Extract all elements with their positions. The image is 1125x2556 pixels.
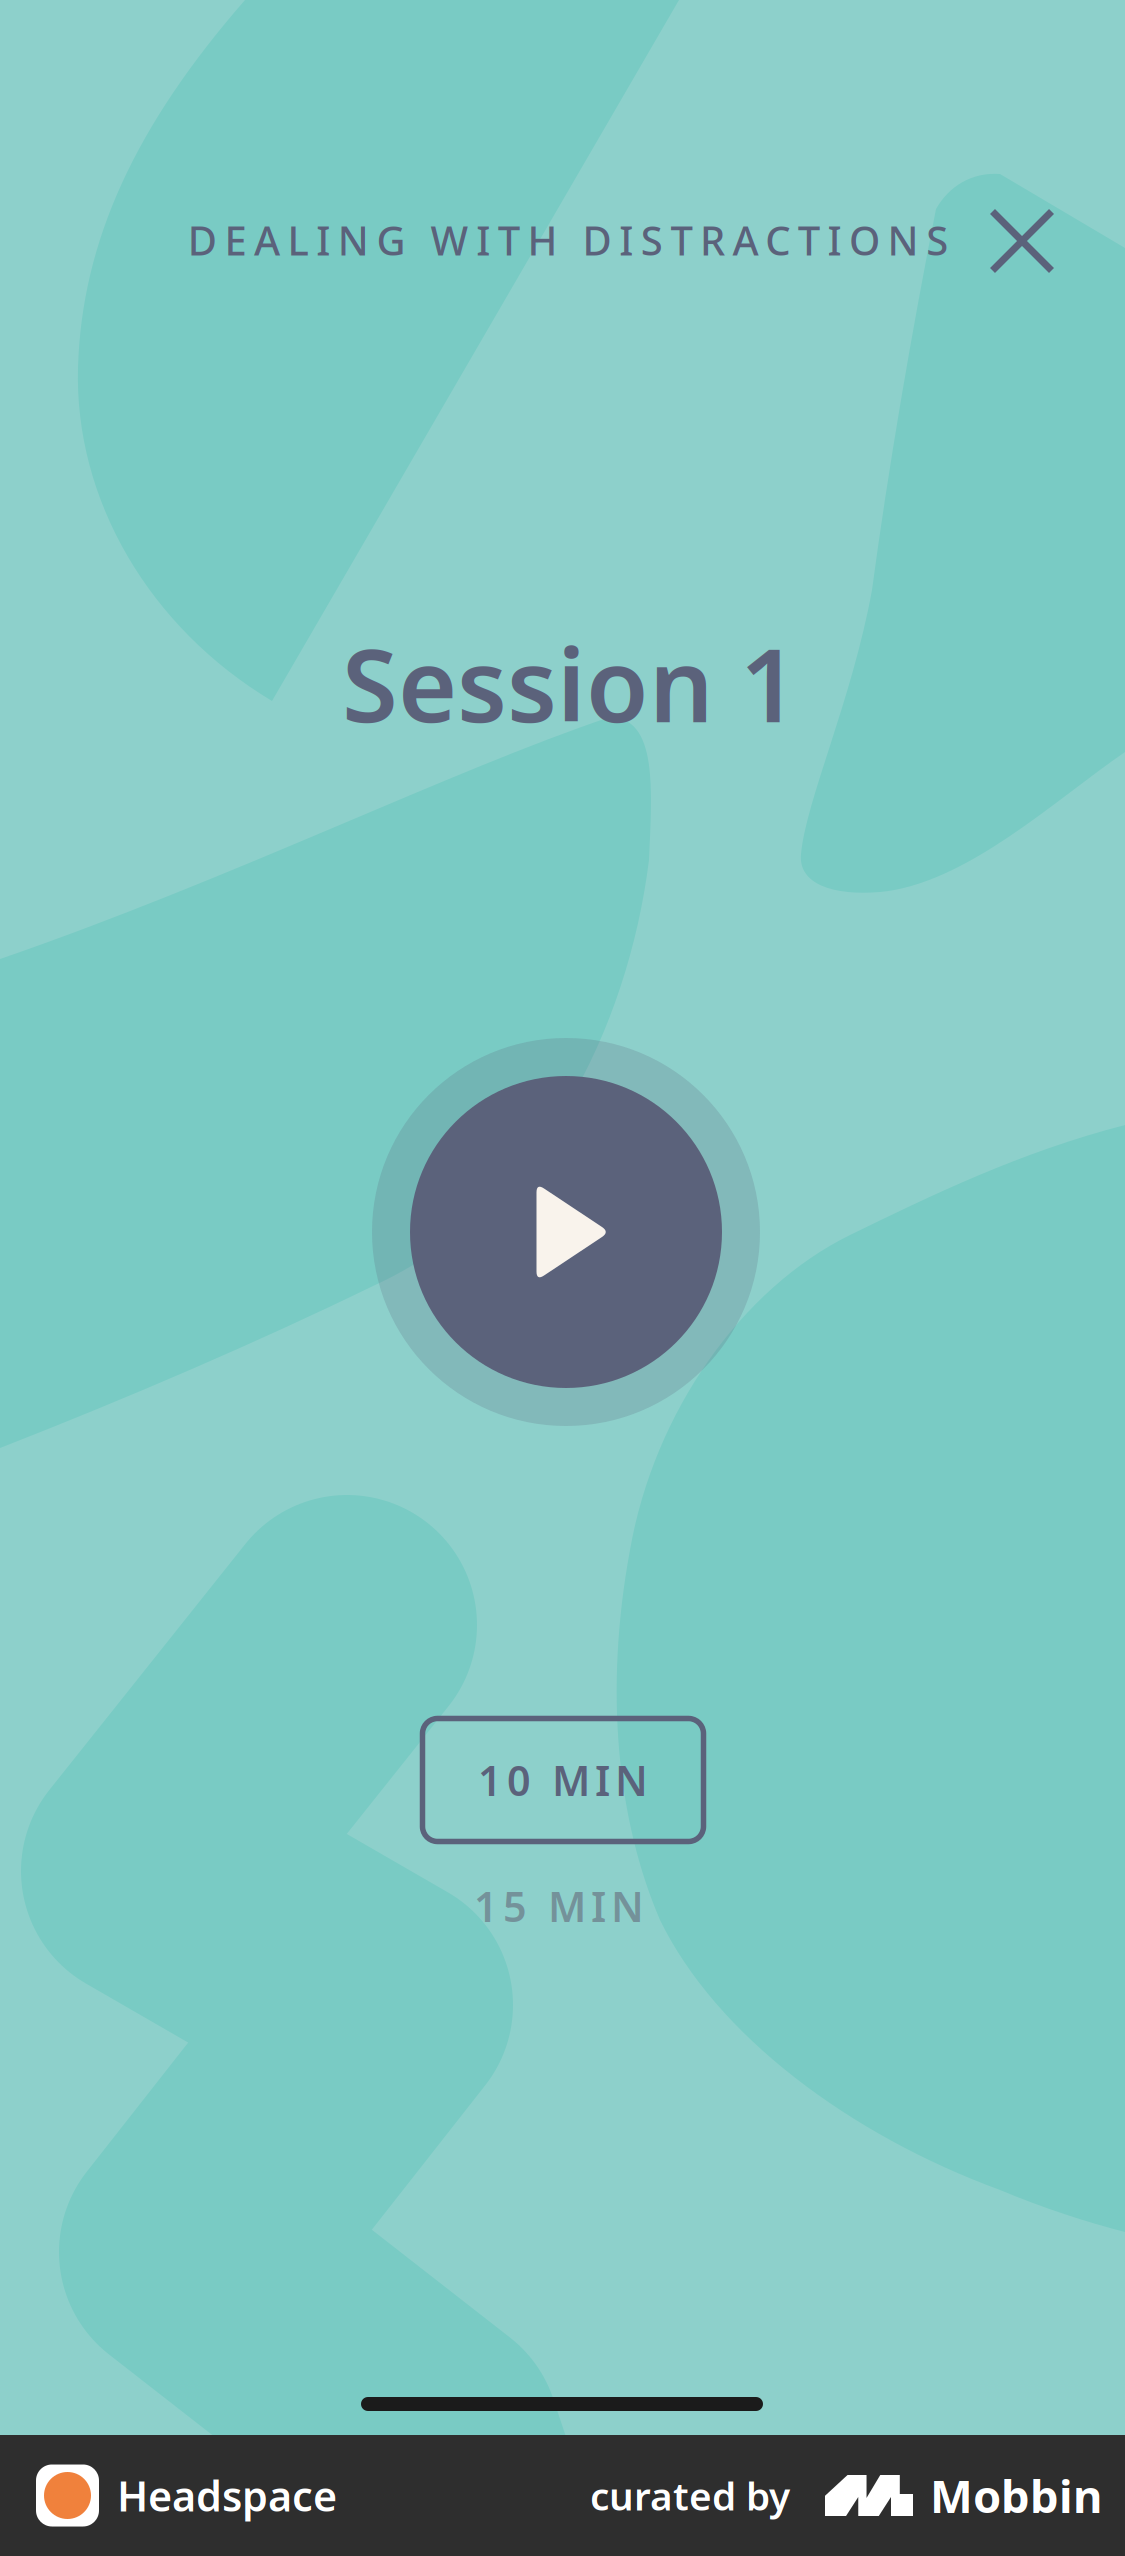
staticText: 10 MIN	[478, 1753, 648, 1807]
button[interactable]: Play session	[372, 1038, 760, 1426]
staticText: curated by	[590, 2470, 790, 2521]
button[interactable]: 10 MIN	[422, 1718, 703, 1841]
staticText: DEALING WITH DISTRACTIONS	[188, 213, 948, 266]
button[interactable]: Close	[966, 185, 1077, 296]
staticText: Mobbin	[930, 2465, 1102, 2526]
staticText: Session 1	[342, 616, 798, 750]
button[interactable]: 15 MIN	[418, 1858, 699, 1954]
staticText: 15 MIN	[474, 1879, 644, 1933]
staticText: Headspace	[117, 2468, 337, 2523]
